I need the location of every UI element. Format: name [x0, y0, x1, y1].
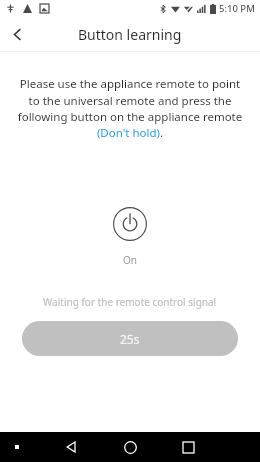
button[interactable]: Home — [115, 432, 145, 462]
button[interactable]: 25s — [22, 321, 238, 356]
button[interactable]: Back — [57, 432, 87, 462]
staticText: Button learning — [78, 25, 182, 44]
button[interactable]: Power on — [108, 202, 152, 246]
staticText: 5:10 PM — [219, 2, 255, 15]
staticText: On — [123, 253, 137, 267]
staticText: Waiting for the remote control signal — [43, 295, 217, 309]
button[interactable]: Recents — [173, 432, 203, 462]
staticText: Please use the appliance remote to point… — [16, 76, 244, 140]
button[interactable]: Back — [0, 17, 34, 51]
staticText: 25s — [120, 331, 140, 347]
